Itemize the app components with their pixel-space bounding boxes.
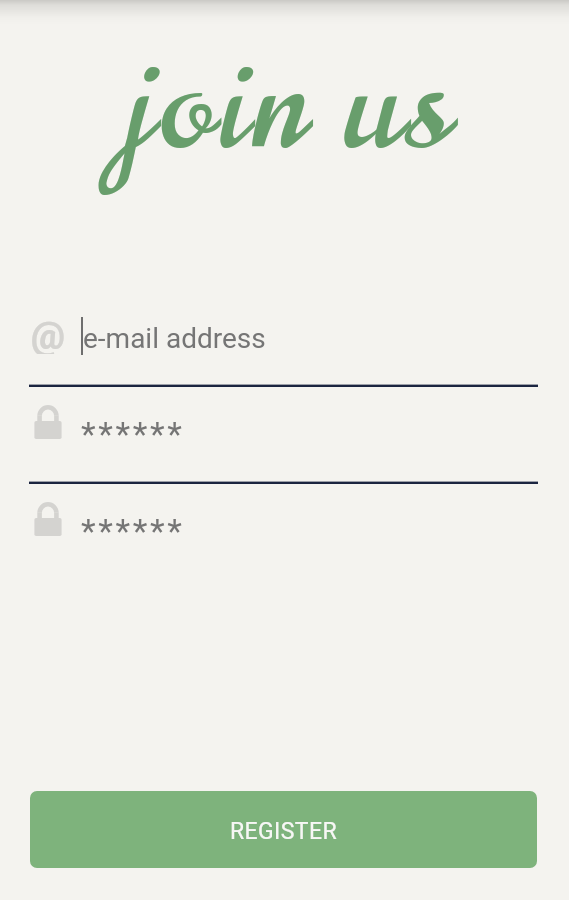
staticText: join us	[126, 16, 456, 195]
staticText: ******	[81, 511, 185, 551]
button[interactable]: Password	[0, 382, 569, 462]
button[interactable]: Password	[0, 479, 569, 559]
button[interactable]: REGISTER	[30, 791, 537, 868]
staticText: @	[31, 314, 66, 354]
staticText: e-mail address	[83, 322, 266, 355]
other: Email	[28, 315, 68, 355]
other: Password	[31, 502, 65, 536]
staticText: ******	[81, 414, 185, 454]
button[interactable]: Email	[0, 295, 569, 375]
other: Password	[31, 405, 65, 439]
staticText: REGISTER	[230, 818, 337, 845]
